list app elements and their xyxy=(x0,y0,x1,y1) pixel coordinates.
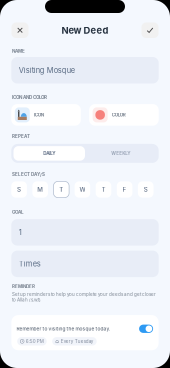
staticText: NAME xyxy=(12,48,25,54)
staticText: S xyxy=(144,186,148,193)
button[interactable]: Reminder enabled xyxy=(139,325,153,333)
button[interactable]: DAILY xyxy=(13,146,85,161)
staticText: 1 xyxy=(19,228,22,237)
button[interactable]: Save xyxy=(141,22,158,38)
staticText: M xyxy=(37,186,43,193)
button[interactable]: COLOR xyxy=(89,104,159,126)
staticText: ICON xyxy=(34,112,44,118)
button[interactable]: T xyxy=(53,181,69,198)
staticText: W xyxy=(79,186,85,193)
staticText: DAILY xyxy=(43,151,55,156)
button[interactable]: T xyxy=(96,181,111,198)
button[interactable]: S xyxy=(138,181,153,198)
staticText: Visiting Mosque xyxy=(19,66,75,75)
staticText: S xyxy=(17,186,21,193)
button[interactable]: W xyxy=(75,181,90,198)
staticText: ICON AND COLOR xyxy=(12,95,47,100)
staticText: SELECT DAY/S xyxy=(12,172,45,177)
staticText: F xyxy=(123,186,127,193)
button[interactable]: M xyxy=(32,181,48,198)
button[interactable]: F xyxy=(117,181,132,198)
staticText: WEEKLY xyxy=(111,151,130,156)
staticText: GOAL xyxy=(12,209,24,215)
staticText: REMINDER xyxy=(12,284,35,289)
staticText: New Deed xyxy=(61,25,108,36)
staticText: Remember to visiting the mosque today. xyxy=(16,326,109,332)
staticText: 6:50 PM xyxy=(26,339,44,344)
staticText: REPEAT xyxy=(12,134,30,139)
staticText: Set up reminders to help you complete yo… xyxy=(12,292,156,303)
staticText: Times xyxy=(19,259,41,268)
button[interactable]: S xyxy=(11,181,27,198)
staticText: Every Tuesday xyxy=(61,339,94,344)
staticText: COLOR xyxy=(112,112,126,118)
staticText: T xyxy=(59,186,63,193)
button[interactable]: Cancel xyxy=(11,22,28,38)
button[interactable]: ICON xyxy=(11,104,81,126)
staticText: T xyxy=(101,186,105,193)
button[interactable]: WEEKLY xyxy=(85,146,156,161)
